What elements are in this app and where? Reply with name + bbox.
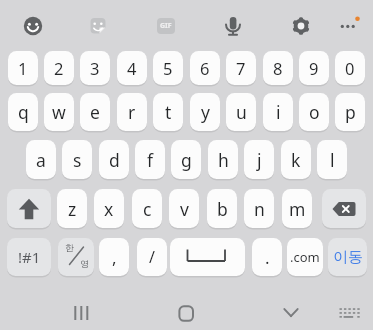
button[interactable]: 2 [44, 51, 74, 85]
button[interactable]: q [8, 93, 38, 131]
button[interactable] [63, 295, 99, 330]
staticText: d [109, 148, 120, 172]
button[interactable] [80, 8, 116, 44]
staticText: 0 [345, 57, 355, 79]
button[interactable] [273, 295, 309, 330]
staticText: . [265, 246, 270, 269]
button[interactable]: 0 [335, 51, 365, 85]
staticText: c [143, 197, 152, 221]
button[interactable]: o [299, 93, 329, 131]
staticText: h [218, 148, 229, 172]
button[interactable]: x [94, 189, 124, 228]
staticText: 6 [200, 57, 210, 79]
staticText: y [201, 100, 210, 124]
button[interactable]: i [263, 93, 293, 131]
staticText: , [112, 246, 117, 269]
button[interactable]: l [317, 140, 347, 179]
button[interactable]: n [244, 189, 274, 228]
button[interactable]: d [99, 140, 129, 179]
button[interactable]: a [26, 140, 56, 179]
button[interactable] [170, 238, 245, 276]
staticText: 1 [18, 57, 28, 79]
button[interactable]: , [99, 238, 129, 276]
button[interactable]: 9 [299, 51, 329, 85]
staticText: n [254, 197, 265, 221]
staticText: u [236, 100, 247, 124]
staticText: GIF [160, 21, 172, 31]
button[interactable]: 4 [117, 51, 147, 85]
button[interactable]: k [281, 140, 311, 179]
button[interactable]: v [169, 189, 199, 228]
button[interactable]: GIF [157, 18, 175, 34]
button[interactable]: f [135, 140, 165, 179]
button[interactable]: 한 [58, 238, 94, 276]
staticText: 3 [90, 57, 100, 79]
button[interactable]: u [226, 93, 256, 131]
staticText: 9 [309, 57, 319, 79]
button[interactable]: g [171, 140, 201, 179]
button[interactable] [322, 189, 366, 228]
staticText: 2 [54, 57, 64, 79]
staticText: / [149, 246, 155, 268]
button[interactable]: t [153, 93, 183, 131]
button[interactable]: p [335, 93, 365, 131]
button[interactable] [7, 189, 51, 228]
staticText: i [276, 100, 281, 124]
button[interactable]: 1 [8, 51, 38, 85]
staticText: q [18, 100, 29, 124]
button[interactable] [15, 8, 51, 44]
staticText: b [217, 197, 228, 221]
button[interactable]: .com [287, 238, 323, 276]
staticText: w [52, 100, 66, 124]
button[interactable]: 7 [226, 51, 256, 85]
staticText: 영 [80, 258, 89, 269]
button[interactable]: h [208, 140, 238, 179]
button[interactable]: 이동 [328, 238, 367, 276]
staticText: a [36, 148, 46, 172]
staticText: g [181, 148, 192, 172]
staticText: 5 [163, 57, 173, 79]
staticText: 4 [127, 57, 137, 79]
button[interactable]: e [80, 93, 110, 131]
staticText: k [291, 148, 301, 172]
staticText: l [330, 148, 335, 172]
staticText: o [309, 100, 320, 124]
staticText: x [104, 197, 114, 221]
button[interactable]: r [117, 93, 147, 131]
button[interactable]: s [62, 140, 92, 179]
button[interactable]: m [282, 189, 312, 228]
staticText: !#1 [18, 247, 41, 267]
button[interactable]: 8 [263, 51, 293, 85]
button[interactable]: 3 [80, 51, 110, 85]
button[interactable]: z [57, 189, 87, 228]
button[interactable]: c [132, 189, 162, 228]
button[interactable]: w [44, 93, 74, 131]
staticText: s [73, 148, 82, 172]
button[interactable] [330, 8, 368, 46]
button[interactable]: b [207, 189, 237, 228]
staticText: j [257, 148, 262, 172]
button[interactable]: 6 [190, 51, 220, 85]
button[interactable] [215, 8, 251, 44]
staticText: 한 [65, 242, 74, 253]
button[interactable]: y [190, 93, 220, 131]
staticText: e [90, 100, 100, 124]
button[interactable] [330, 295, 367, 330]
button[interactable]: j [244, 140, 274, 179]
button[interactable] [168, 295, 204, 330]
staticText: 7 [236, 57, 246, 79]
button[interactable]: !#1 [7, 238, 51, 276]
staticText: .com [290, 248, 320, 266]
button[interactable]: . [252, 238, 282, 276]
staticText: m [289, 197, 306, 221]
button[interactable] [283, 8, 319, 44]
staticText: p [345, 100, 356, 124]
staticText: v [180, 197, 189, 221]
staticText: z [68, 197, 77, 221]
button[interactable]: / [137, 238, 167, 276]
staticText: 이동 [333, 248, 363, 267]
button[interactable]: 5 [153, 51, 183, 85]
staticText: t [165, 100, 172, 124]
staticText: f [147, 148, 154, 172]
staticText: 8 [273, 57, 283, 79]
